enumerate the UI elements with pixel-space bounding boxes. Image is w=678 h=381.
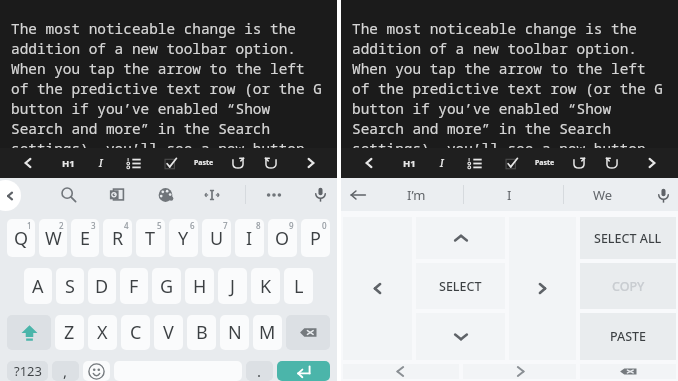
button[interactable]: COPY (580, 263, 676, 309)
staticText: U (210, 226, 224, 251)
button[interactable]: Z (55, 315, 84, 350)
button[interactable]: Select next word (463, 364, 576, 379)
button[interactable]: Italic (85, 148, 117, 178)
staticText: addition of a new toolbar option. (11, 39, 296, 59)
staticText: I (99, 156, 103, 170)
button[interactable]: S (56, 268, 84, 304)
button[interactable]: T (136, 219, 165, 257)
button[interactable]: G (152, 268, 181, 304)
button[interactable]: Next (636, 148, 668, 178)
staticText: button if you’ve enabled “Show (11, 99, 271, 119)
button[interactable]: Numbered list (117, 148, 149, 178)
button[interactable]: SELECT ALL (580, 217, 676, 259)
button[interactable]: I (479, 178, 539, 211)
button[interactable]: O (268, 219, 297, 257)
button[interactable]: Paste (188, 148, 220, 178)
button[interactable]: Shift (7, 315, 51, 350)
staticText: COPY (612, 278, 645, 295)
button[interactable]: Heading 1 (52, 148, 84, 178)
button[interactable]: N (220, 315, 249, 350)
staticText: Search and more” in the Search (11, 119, 271, 139)
button[interactable]: Symbols (7, 361, 48, 381)
staticText: K (260, 274, 272, 299)
staticText: 4 (124, 220, 129, 231)
button[interactable]: Google search (99, 178, 133, 211)
button[interactable]: F (120, 268, 148, 304)
button[interactable]: I’m (386, 178, 446, 211)
button[interactable]: More options (257, 178, 291, 211)
button[interactable]: Previous (353, 148, 385, 178)
button[interactable]: Q (7, 219, 35, 257)
button[interactable]: Undo (596, 148, 628, 178)
staticText: G (160, 274, 174, 299)
button[interactable]: W (39, 219, 67, 257)
button[interactable]: M (253, 315, 282, 350)
button[interactable]: J (218, 268, 247, 304)
button[interactable]: Previous (12, 148, 44, 178)
button[interactable]: Redo (563, 148, 595, 178)
button[interactable]: Move up (416, 217, 505, 259)
button[interactable]: Search (51, 178, 85, 211)
staticText: F (129, 274, 139, 299)
staticText: A (32, 274, 44, 299)
button[interactable]: Next (295, 148, 327, 178)
button[interactable]: Select previous word (343, 364, 459, 379)
button[interactable]: Back (342, 179, 374, 211)
button[interactable]: Numbered list (458, 148, 490, 178)
staticText: button if you’ve enabled “Show (352, 99, 612, 119)
button[interactable]: Comma (52, 361, 79, 381)
button[interactable]: I (235, 219, 264, 257)
staticText: H1 (62, 157, 75, 170)
button[interactable]: B (187, 315, 216, 350)
staticText: We (593, 186, 613, 204)
button[interactable]: Italic (426, 148, 458, 178)
button[interactable]: X (88, 315, 117, 350)
button[interactable]: Delete (580, 364, 676, 379)
button[interactable]: R (103, 219, 132, 257)
button[interactable]: Enter (277, 361, 330, 381)
button[interactable]: Select (416, 263, 505, 309)
button[interactable]: Checklist (154, 148, 186, 178)
button[interactable]: PASTE (580, 313, 676, 360)
button[interactable]: E (71, 219, 99, 257)
button[interactable]: Redo (222, 148, 254, 178)
staticText: L (294, 274, 304, 299)
staticText: J (230, 274, 235, 299)
button[interactable]: Text editing (195, 178, 229, 211)
button[interactable]: Checklist (495, 148, 527, 178)
button[interactable]: Emoji (83, 361, 110, 381)
button[interactable]: Backspace (286, 315, 330, 350)
button[interactable]: Voice input (303, 178, 337, 211)
button[interactable]: K (251, 268, 280, 304)
button[interactable]: Y (169, 219, 198, 257)
staticText: 9 (289, 220, 294, 231)
staticText: I (440, 156, 444, 170)
button[interactable]: Move right (509, 217, 576, 360)
button[interactable]: V (154, 315, 183, 350)
staticText: I (507, 186, 512, 204)
button[interactable]: P (301, 219, 330, 257)
button[interactable]: Move left (343, 217, 412, 360)
button[interactable]: U (202, 219, 231, 257)
button[interactable]: Period (246, 361, 273, 381)
staticText: of the predictive text row (or the G (352, 79, 663, 99)
staticText: of the predictive text row (or the G (11, 79, 322, 99)
button[interactable]: Heading 1 (393, 148, 425, 178)
button[interactable]: D (88, 268, 116, 304)
staticText: N (228, 320, 242, 345)
button[interactable]: H (185, 268, 214, 304)
button[interactable]: Voice input (647, 179, 678, 211)
button[interactable]: A (24, 268, 52, 304)
button[interactable]: C (121, 315, 150, 350)
button[interactable]: L (284, 268, 313, 304)
button[interactable]: Move down (416, 313, 505, 360)
button[interactable]: We (573, 178, 633, 211)
staticText: X (97, 320, 108, 345)
button[interactable]: Themes (149, 178, 183, 211)
button[interactable]: Undo (255, 148, 287, 178)
button[interactable]: Paste (529, 148, 561, 178)
button[interactable]: Back (0, 180, 21, 211)
staticText: 1 (27, 220, 32, 231)
staticText: 6 (190, 220, 195, 231)
